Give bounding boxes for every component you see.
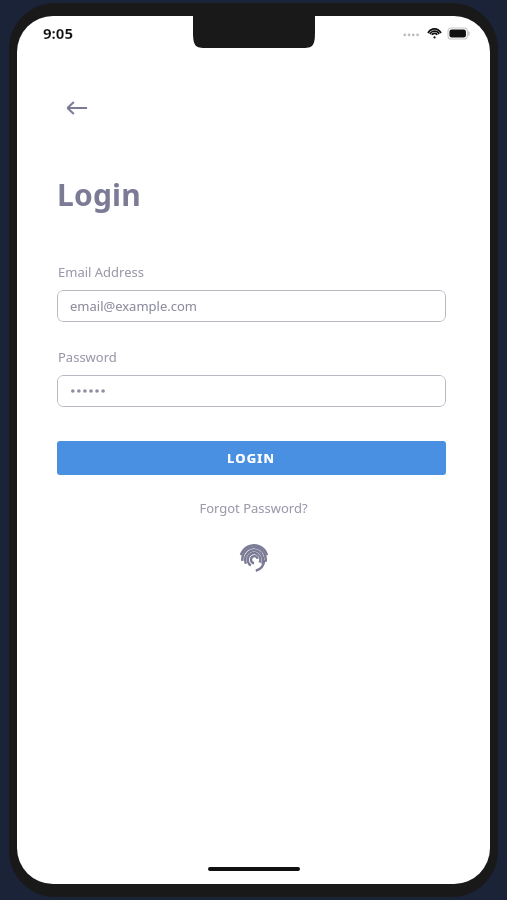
button[interactable]: Login with fingerprint xyxy=(232,537,276,581)
button[interactable]: LOGIN xyxy=(57,441,446,475)
button[interactable]: email@example.com xyxy=(57,290,446,322)
staticText: Email Address xyxy=(58,263,144,281)
staticText: LOGIN xyxy=(227,449,276,467)
staticText: Forgot Password? xyxy=(199,499,308,517)
button[interactable]: Back xyxy=(55,86,99,130)
button[interactable]: Forgot Password? xyxy=(199,499,308,517)
staticText: email@example.com xyxy=(70,297,197,315)
staticText: 9:05 xyxy=(43,23,73,43)
staticText: Password xyxy=(58,348,117,366)
button[interactable] xyxy=(57,375,446,407)
staticText: Login xyxy=(57,174,141,215)
